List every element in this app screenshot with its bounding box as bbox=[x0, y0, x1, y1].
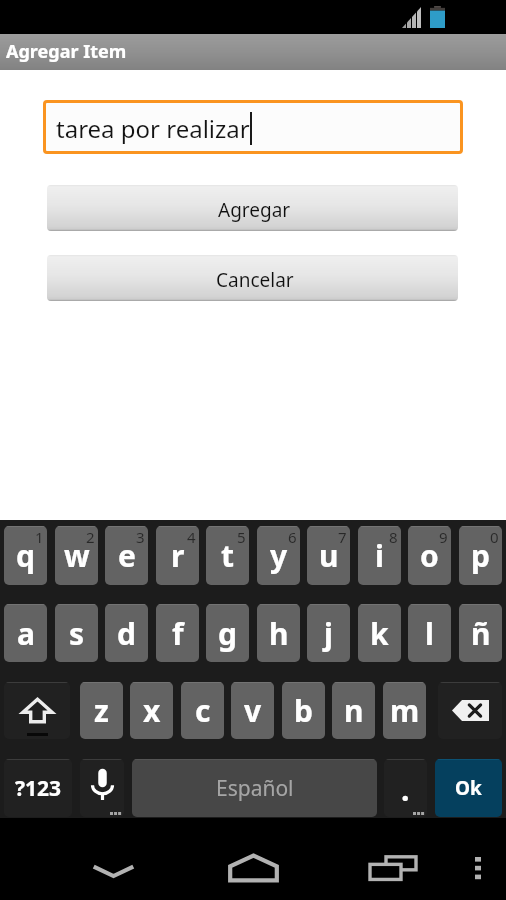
staticText: ?123 bbox=[15, 774, 62, 803]
staticText: w bbox=[64, 535, 90, 576]
button[interactable]: v bbox=[231, 682, 274, 739]
button[interactable]: f bbox=[156, 604, 199, 662]
staticText: s bbox=[69, 613, 85, 654]
staticText: m bbox=[390, 690, 420, 731]
button[interactable]: l bbox=[408, 604, 451, 662]
staticText: g bbox=[218, 613, 237, 654]
staticText: 5 bbox=[237, 527, 246, 547]
staticText: f bbox=[172, 613, 184, 654]
staticText: c bbox=[195, 690, 211, 731]
staticText: n bbox=[344, 690, 364, 731]
staticText: o bbox=[420, 535, 439, 576]
staticText: z bbox=[94, 690, 109, 731]
staticText: 3 bbox=[136, 527, 145, 547]
button[interactable]: d bbox=[105, 604, 148, 662]
button[interactable]: tarea por realizar bbox=[43, 100, 463, 154]
button[interactable]: a bbox=[4, 604, 47, 662]
staticText: 0 bbox=[490, 527, 499, 547]
button[interactable]: Home bbox=[223, 848, 283, 888]
staticText: j bbox=[324, 613, 333, 654]
staticText: Español bbox=[216, 774, 294, 803]
button[interactable]: p bbox=[459, 526, 502, 585]
staticText: r bbox=[171, 535, 185, 576]
staticText: 1 bbox=[35, 527, 44, 547]
button[interactable]: ?123 bbox=[4, 759, 72, 817]
staticText: 7 bbox=[338, 527, 347, 547]
button[interactable]: w bbox=[55, 526, 98, 585]
button[interactable]: Voice input bbox=[80, 759, 124, 817]
staticText: a bbox=[17, 613, 35, 654]
staticText: Agregar bbox=[218, 197, 291, 223]
staticText: Ok bbox=[455, 775, 482, 801]
staticText: k bbox=[370, 613, 389, 654]
button[interactable]: Agregar bbox=[47, 185, 458, 231]
button[interactable]: r bbox=[156, 526, 199, 585]
button[interactable]: x bbox=[130, 682, 173, 739]
staticText: tarea por realizar bbox=[56, 112, 250, 145]
button[interactable]: m bbox=[383, 682, 426, 739]
button[interactable]: Hide keyboard bbox=[83, 851, 143, 891]
staticText: ñ bbox=[471, 613, 491, 654]
button[interactable]: s bbox=[55, 604, 98, 662]
staticText: 8 bbox=[389, 527, 398, 547]
button[interactable]: j bbox=[307, 604, 350, 662]
button[interactable]: ñ bbox=[459, 604, 502, 662]
button[interactable]: g bbox=[206, 604, 249, 662]
button[interactable]: More options bbox=[458, 848, 498, 888]
staticText: y bbox=[270, 535, 288, 576]
button[interactable]: e bbox=[105, 526, 148, 585]
staticText: q bbox=[16, 535, 35, 576]
button[interactable]: t bbox=[206, 526, 249, 585]
staticText: 6 bbox=[288, 527, 297, 547]
button[interactable]: q bbox=[4, 526, 47, 585]
button[interactable]: . bbox=[384, 759, 427, 817]
button[interactable]: Cancelar bbox=[47, 255, 458, 301]
staticText: x bbox=[143, 690, 161, 731]
button[interactable]: h bbox=[257, 604, 300, 662]
staticText: . bbox=[401, 769, 410, 810]
staticText: Cancelar bbox=[216, 267, 294, 293]
staticText: v bbox=[244, 690, 262, 731]
staticText: 9 bbox=[439, 527, 448, 547]
button[interactable]: o bbox=[408, 526, 451, 585]
button[interactable]: Backspace bbox=[438, 682, 502, 739]
staticText: i bbox=[375, 535, 384, 576]
button[interactable]: k bbox=[358, 604, 401, 662]
button[interactable]: Ok bbox=[435, 759, 502, 817]
button[interactable]: b bbox=[282, 682, 325, 739]
staticText: t bbox=[221, 535, 235, 576]
button[interactable]: z bbox=[80, 682, 123, 739]
staticText: 4 bbox=[187, 527, 196, 547]
staticText: e bbox=[118, 535, 136, 576]
button[interactable]: Español bbox=[132, 759, 377, 817]
button[interactable]: c bbox=[181, 682, 224, 739]
button[interactable]: Recent apps bbox=[363, 848, 423, 888]
button[interactable]: u bbox=[307, 526, 350, 585]
button[interactable]: y bbox=[257, 526, 300, 585]
staticText: l bbox=[425, 613, 434, 654]
staticText: d bbox=[117, 613, 136, 654]
button[interactable]: n bbox=[332, 682, 375, 739]
staticText: p bbox=[471, 535, 490, 576]
staticText: h bbox=[269, 613, 289, 654]
staticText: Agregar Item bbox=[6, 39, 127, 64]
button[interactable]: i bbox=[358, 526, 401, 585]
staticText: 2 bbox=[86, 527, 95, 547]
staticText: b bbox=[294, 690, 313, 731]
button[interactable]: Shift bbox=[4, 682, 70, 739]
staticText: u bbox=[319, 535, 339, 576]
